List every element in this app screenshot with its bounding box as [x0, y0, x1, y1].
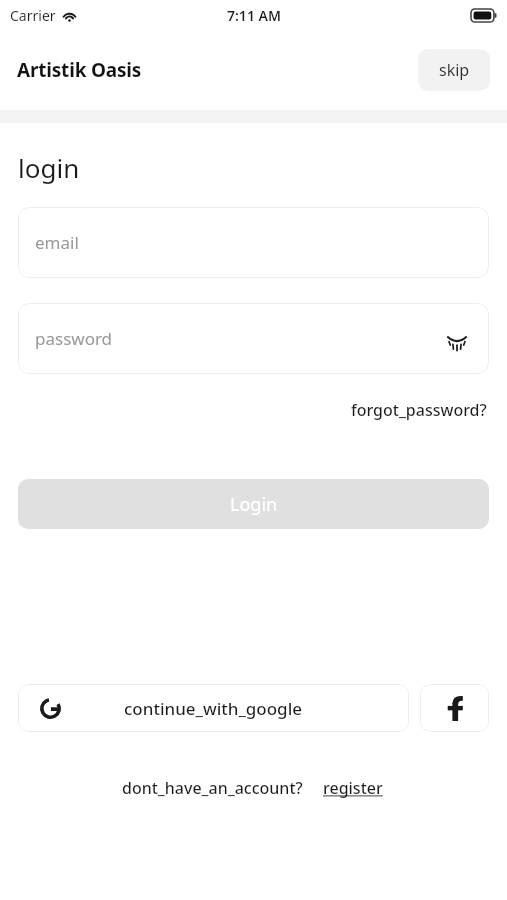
staticText: Carrier	[10, 6, 56, 25]
button[interactable]: Login	[18, 479, 489, 529]
staticText: email	[35, 231, 79, 254]
button[interactable]: Continue with Facebook	[420, 684, 489, 732]
button[interactable]: password	[18, 303, 489, 374]
button[interactable]: continue_with_google	[18, 684, 409, 732]
staticText: forgot_password?	[351, 399, 487, 421]
staticText: dont_have_an_account?	[122, 777, 303, 799]
button[interactable]: email	[18, 207, 489, 278]
button[interactable]: skip	[418, 49, 490, 91]
staticText: password	[35, 327, 113, 350]
button[interactable]: register	[321, 774, 385, 802]
staticText: Artistik Oasis	[17, 57, 142, 83]
staticText: Login	[230, 492, 278, 517]
staticText: skip	[439, 59, 470, 81]
staticText: continue_with_google	[124, 697, 303, 720]
staticText: 7:11 AM	[227, 6, 281, 25]
button[interactable]: Show password	[440, 322, 474, 356]
button[interactable]: forgot_password?	[349, 396, 489, 424]
staticText: register	[323, 777, 383, 799]
staticText: login	[18, 150, 80, 185]
